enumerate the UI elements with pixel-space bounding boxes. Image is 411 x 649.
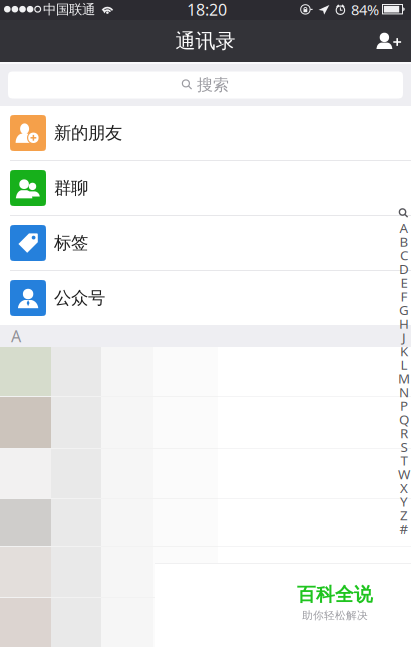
staticText: X (400, 479, 408, 497)
staticText: T (400, 451, 407, 469)
button[interactable]: 群聊 (0, 161, 411, 215)
staticText: Z (400, 506, 408, 524)
staticText: A (11, 325, 21, 347)
staticText: E (400, 274, 407, 291)
staticText: 通讯录 (175, 29, 235, 53)
staticText: Y (400, 493, 408, 510)
staticText: C (400, 246, 408, 264)
staticText: 公众号 (54, 287, 105, 309)
staticText: M (398, 369, 410, 387)
staticText: 标签 (54, 232, 88, 254)
button[interactable]: 公众号 (0, 271, 411, 325)
staticText: A (399, 219, 408, 237)
staticText: F (400, 287, 407, 305)
button[interactable]: Section index (397, 0, 411, 536)
staticText: 助你轻松解决 (302, 609, 368, 622)
staticText: N (399, 383, 409, 401)
staticText: 18:20 (187, 0, 227, 20)
button[interactable]: 标签 (0, 216, 411, 270)
button[interactable]: Add contact (367, 20, 411, 62)
button[interactable]: 搜索 (0, 64, 411, 106)
staticText: L (400, 356, 407, 373)
staticText: 新的朋友 (54, 122, 122, 144)
button[interactable]: 新的朋友 (0, 106, 411, 160)
staticText: R (400, 424, 408, 442)
staticText: # (399, 520, 408, 538)
staticText: H (399, 315, 409, 332)
staticText: W (398, 465, 410, 483)
staticText: 中国联通 (43, 1, 95, 18)
staticText: S (400, 438, 407, 456)
staticText: P (400, 397, 408, 414)
staticText: 群聊 (54, 177, 88, 199)
staticText: Q (399, 410, 409, 428)
staticText: K (400, 342, 408, 360)
staticText: 百科全说 (297, 583, 373, 606)
staticText: G (399, 301, 409, 319)
staticText: J (402, 328, 406, 346)
staticText: B (399, 233, 408, 250)
staticText: D (399, 260, 409, 278)
staticText: 84% (351, 0, 379, 19)
staticText: 搜索 (197, 75, 229, 95)
